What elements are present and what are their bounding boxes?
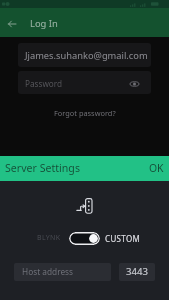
button[interactable]: Server mode toggle <box>69 232 100 245</box>
button[interactable]: Password <box>18 71 151 94</box>
staticText: 3443 <box>126 265 148 278</box>
button[interactable]: Host address <box>14 263 111 281</box>
staticText: Server Settings <box>5 161 80 175</box>
button[interactable]: 3443 <box>119 263 155 281</box>
staticText: Log In <box>30 17 58 30</box>
button[interactable]: Show password <box>128 77 141 90</box>
button[interactable]: Forgot password? <box>48 105 122 121</box>
staticText: Forgot password? <box>54 108 116 118</box>
button[interactable]: Back <box>0 11 23 34</box>
staticText: CUSTOM <box>105 233 141 244</box>
button[interactable]: Jjames.suhanko@gmail.com <box>18 43 151 67</box>
staticText: Jjames.suhanko@gmail.com <box>25 49 148 62</box>
button[interactable]: OK <box>142 156 169 180</box>
staticText: Host address <box>22 266 74 277</box>
staticText: BLYNK <box>37 233 61 243</box>
staticText: OK <box>149 161 164 175</box>
staticText: Password <box>25 78 63 89</box>
